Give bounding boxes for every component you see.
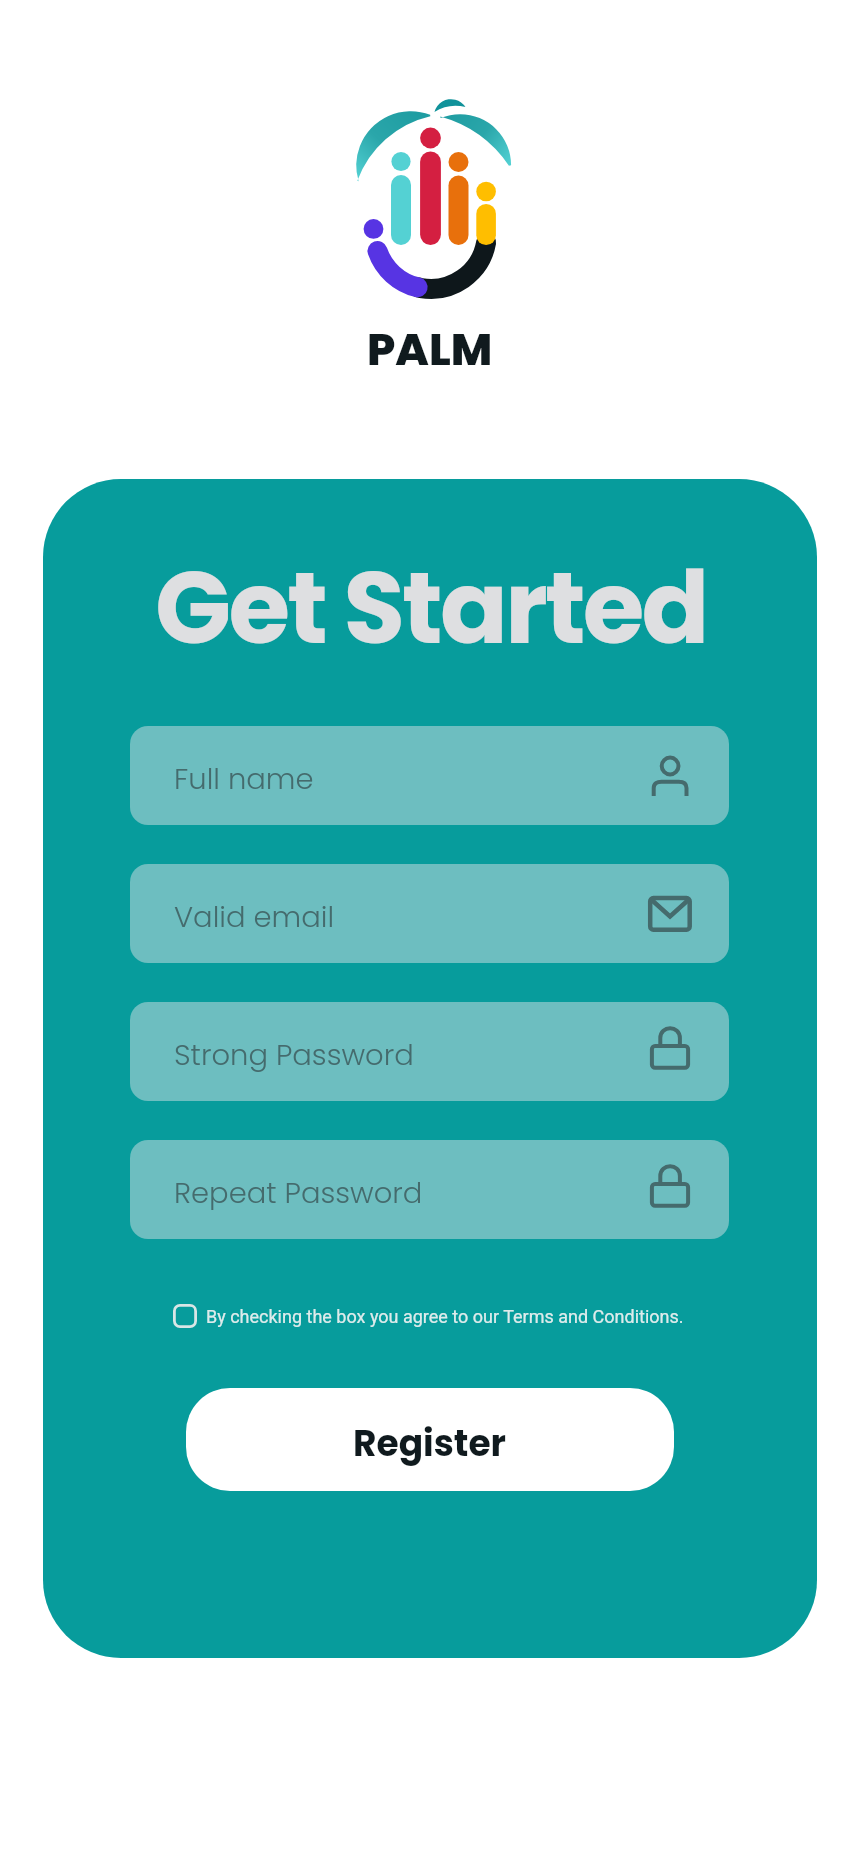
button[interactable]: Valid email [130, 864, 729, 963]
staticText: PALM [367, 318, 493, 380]
staticText: Strong Password [174, 1035, 414, 1076]
other: Repeat Password [130, 1140, 729, 1239]
staticText: By checking the box you agree to our Ter… [206, 1306, 684, 1327]
button[interactable]: Strong Password [130, 1002, 729, 1101]
staticText: Valid email [174, 897, 335, 938]
other: Valid email [130, 864, 729, 963]
button[interactable]: Register [186, 1388, 674, 1491]
other: Strong Password [130, 1002, 729, 1101]
staticText: Register [353, 1418, 507, 1468]
staticText: Full name [174, 759, 314, 800]
button[interactable]: Repeat Password [130, 1140, 729, 1239]
staticText: Get Started [155, 538, 707, 678]
button[interactable]: Accept terms [173, 1304, 684, 1328]
other: Accept terms [173, 1304, 197, 1328]
button[interactable]: Full name [130, 726, 729, 825]
other: Full name [130, 726, 729, 825]
staticText: Repeat Password [174, 1173, 423, 1214]
